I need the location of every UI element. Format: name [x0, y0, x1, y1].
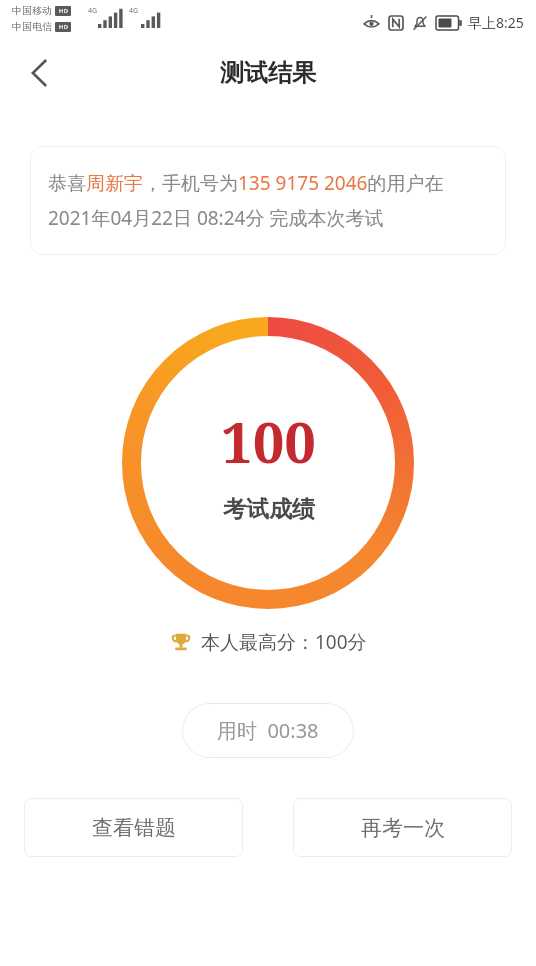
- staticText: 本人最高分：100分: [201, 629, 367, 655]
- staticText: 中国移动: [12, 4, 52, 17]
- staticText: 4G: [88, 6, 98, 16]
- staticText: 用时 00:38: [217, 717, 319, 744]
- button[interactable]: 查看错题: [24, 798, 243, 857]
- staticText: 考试成绩: [223, 495, 315, 524]
- staticText: 100: [221, 403, 316, 479]
- staticText: HD: [59, 23, 68, 31]
- button[interactable]: 再考一次: [293, 798, 512, 857]
- staticText: 中国电信: [12, 20, 52, 33]
- button[interactable]: Back: [16, 50, 62, 96]
- staticText: 测试结果: [220, 58, 316, 88]
- staticText: 4G: [129, 6, 139, 16]
- staticText: HD: [59, 7, 68, 15]
- staticText: 再考一次: [361, 815, 445, 841]
- staticText: 恭喜周新宇，手机号为135 9175 2046的用户在 2021年04月22日 …: [48, 170, 488, 231]
- staticText: 早上8:25: [468, 13, 524, 32]
- button[interactable]: 用时 00:38: [182, 703, 354, 758]
- staticText: 查看错题: [92, 815, 176, 841]
